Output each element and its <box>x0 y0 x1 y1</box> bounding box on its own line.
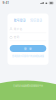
staticText: 9:41 <box>2 1 8 5</box>
staticText: 短信登录 <box>30 18 42 23</box>
staticText: 密码 <box>14 35 20 39</box>
staticText: 账号登录 <box>14 18 26 23</box>
staticText: 登 录 <box>24 47 32 50</box>
staticText: 专业的企业级智能化管理服务平台 <box>13 84 43 87</box>
staticText: 用户名 <box>14 27 23 31</box>
button[interactable]: 账号登录 <box>14 18 26 23</box>
button[interactable]: 登 录 <box>10 45 46 52</box>
staticText: 登录即表示同意用户协议和隐私政策 <box>12 55 44 58</box>
button[interactable]: 短信登录 <box>30 18 42 23</box>
button[interactable]: 登录即表示同意用户协议和隐私政策 <box>10 55 46 58</box>
